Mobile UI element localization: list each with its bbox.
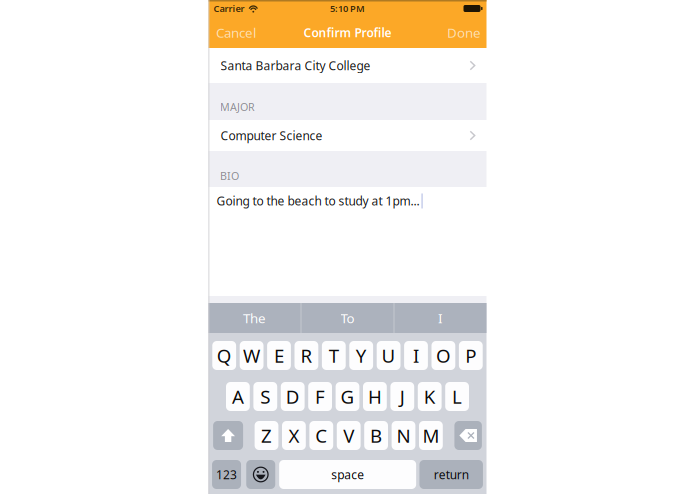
button[interactable]: O [431, 341, 455, 370]
staticText: R [300, 343, 312, 368]
staticText: 123 [216, 466, 237, 482]
staticText: Carrier [213, 2, 244, 15]
staticText: A [232, 384, 244, 409]
button[interactable]: Q [212, 341, 236, 370]
staticText: K [424, 384, 436, 409]
staticText: Cancel [216, 24, 256, 41]
staticText: J [400, 384, 405, 409]
staticText: MAJOR [220, 100, 255, 114]
button[interactable]: V [337, 421, 361, 450]
button[interactable]: W [240, 341, 263, 370]
staticText: To [340, 309, 354, 327]
staticText: B [370, 423, 382, 448]
button[interactable]: Santa Barbara City College [208, 48, 486, 83]
button[interactable]: D [281, 382, 305, 411]
button[interactable]: G [336, 382, 359, 411]
staticText: Santa Barbara City College [220, 57, 370, 73]
button[interactable]: X [282, 421, 306, 450]
staticText: T [329, 343, 339, 368]
button[interactable]: F [308, 382, 332, 411]
button[interactable]: Z [255, 421, 278, 450]
button[interactable]: space [279, 460, 416, 489]
button[interactable]: T [322, 341, 346, 370]
staticText: X [288, 423, 299, 448]
staticText: BIO [220, 169, 239, 183]
button[interactable]: C [309, 421, 333, 450]
staticText: return [434, 466, 469, 482]
button[interactable]: A [226, 382, 250, 411]
staticText: The [243, 309, 266, 327]
button[interactable]: I [394, 303, 486, 333]
staticText: I [438, 309, 443, 327]
button[interactable]: Computer Science [208, 120, 486, 151]
staticText: Computer Science [220, 127, 322, 143]
staticText: D [286, 384, 300, 409]
button[interactable]: U [377, 341, 400, 370]
button[interactable]: Cancel [209, 17, 264, 48]
staticText: N [396, 423, 410, 448]
staticText: V [343, 423, 354, 448]
button[interactable]: E [267, 341, 291, 370]
staticText: 5:10 PM [330, 2, 365, 15]
staticText: W [243, 343, 260, 368]
button[interactable]: H [363, 382, 387, 411]
button[interactable]: return [419, 460, 483, 489]
staticText: G [340, 384, 354, 409]
button[interactable]: Delete [454, 421, 482, 450]
button[interactable]: N [392, 421, 415, 450]
button[interactable]: B [364, 421, 388, 450]
button[interactable]: M [419, 421, 443, 450]
staticText: L [452, 384, 462, 409]
staticText: Y [356, 343, 367, 368]
button[interactable]: J [390, 382, 414, 411]
button[interactable]: The [208, 303, 300, 333]
button[interactable]: P [459, 341, 483, 370]
button[interactable]: I [404, 341, 428, 370]
staticText: S [260, 384, 270, 409]
staticText: O [436, 343, 451, 368]
button[interactable]: Emoji [246, 460, 275, 489]
button[interactable]: Y [349, 341, 373, 370]
staticText: P [465, 343, 476, 368]
button[interactable]: R [294, 341, 318, 370]
staticText: E [274, 343, 284, 368]
button[interactable]: Shift [213, 421, 243, 450]
staticText: M [422, 423, 439, 448]
staticText: Going to the beach to study at 1pm... [216, 193, 419, 209]
staticText: Done [447, 24, 481, 41]
staticText: U [382, 343, 396, 368]
staticText: C [315, 423, 327, 448]
staticText: Confirm Profile [303, 24, 391, 40]
staticText: I [413, 343, 419, 368]
button[interactable]: S [253, 382, 277, 411]
staticText: F [315, 384, 325, 409]
staticText: space [331, 466, 364, 482]
button[interactable]: Done [439, 17, 486, 48]
staticText: H [368, 384, 382, 409]
staticText: Z [261, 423, 272, 448]
button[interactable]: 123 [212, 460, 241, 489]
button[interactable]: L [445, 382, 469, 411]
staticText: Q [217, 343, 232, 368]
button[interactable]: To [301, 303, 393, 333]
button[interactable]: K [418, 382, 442, 411]
